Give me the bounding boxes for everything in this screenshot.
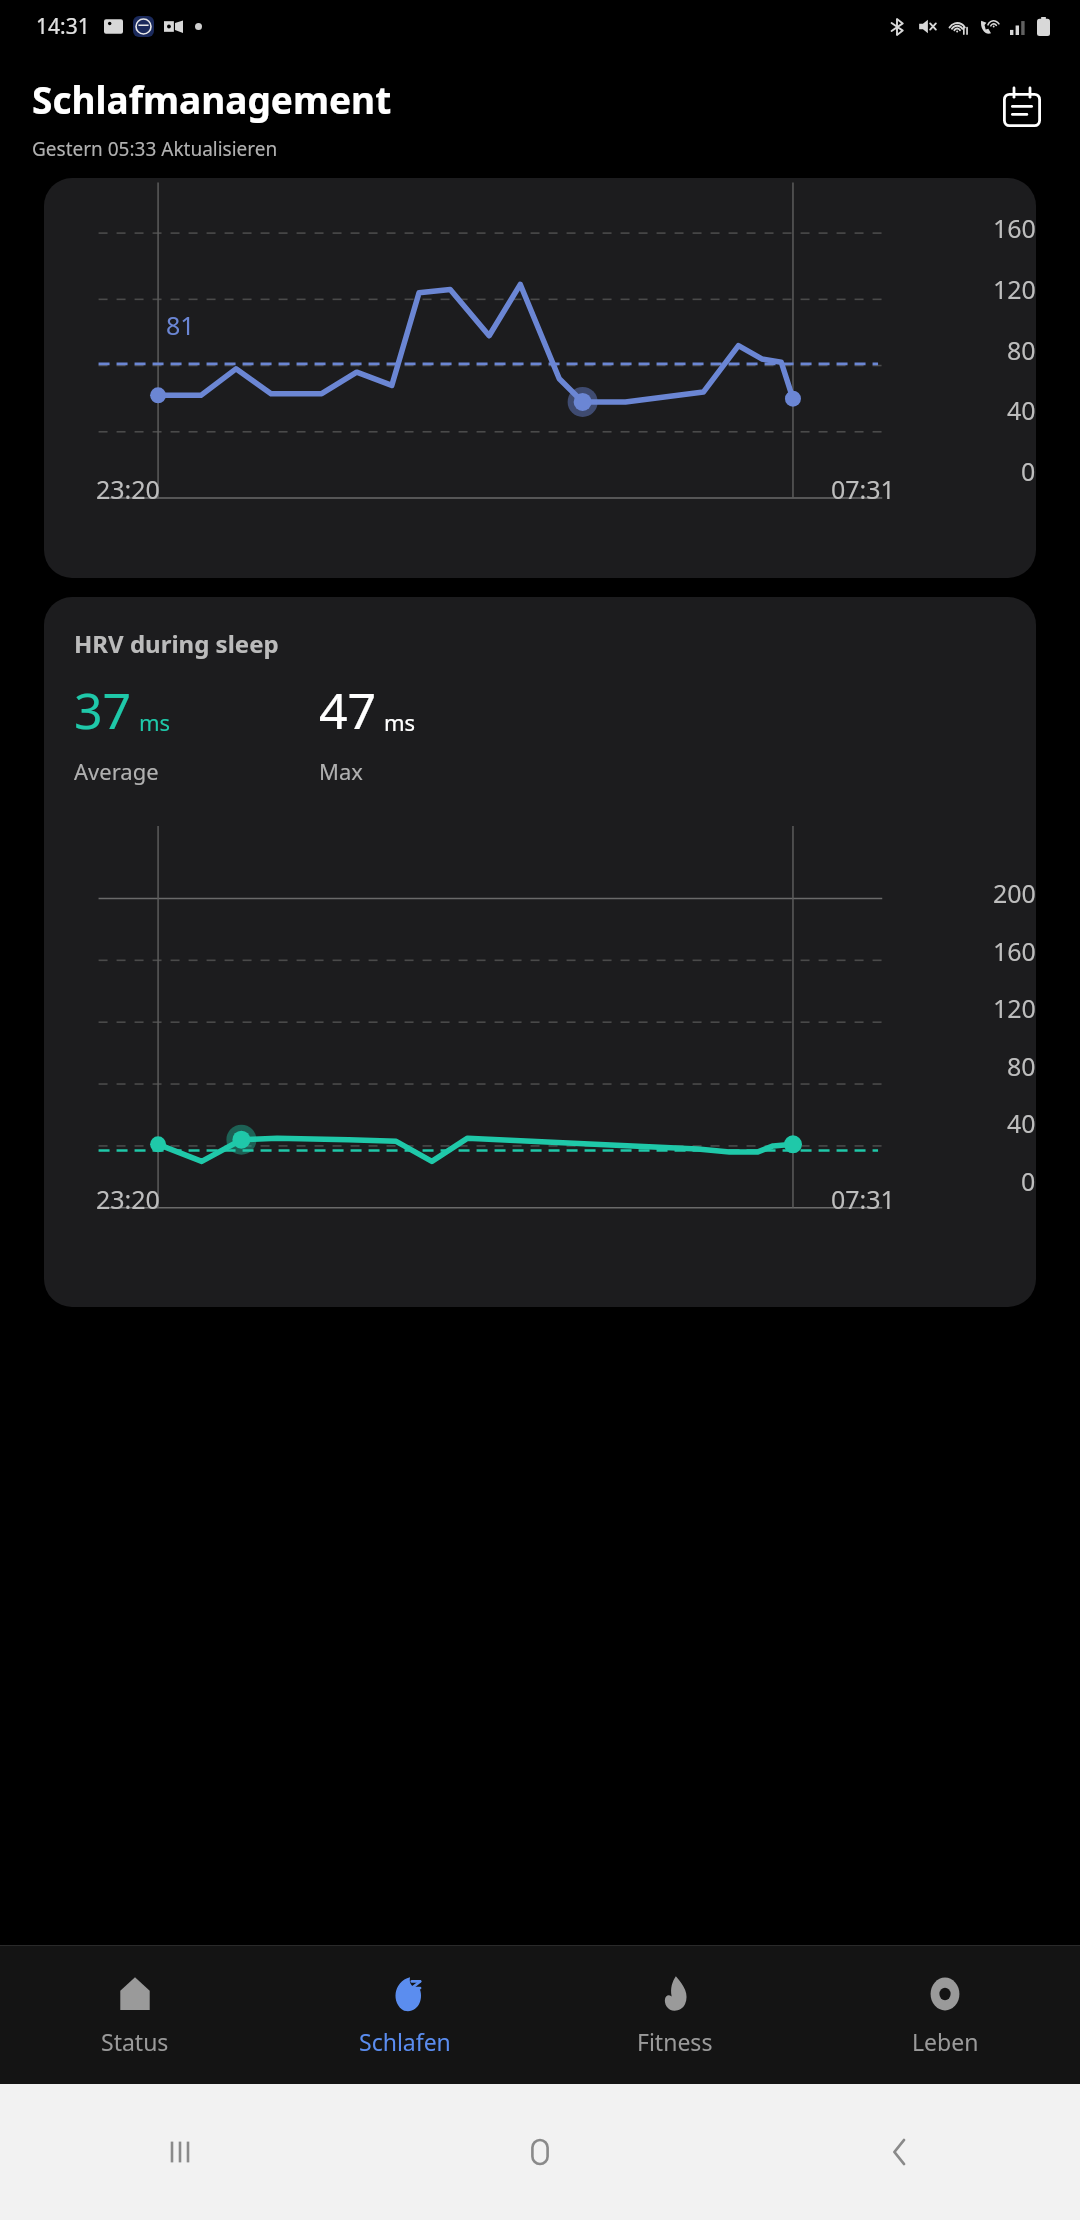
staticText: Fitness (637, 2026, 713, 2057)
button[interactable]: Zurück (720, 2084, 1080, 2220)
staticText: 200 (993, 876, 1036, 910)
staticText: Status (101, 2026, 169, 2057)
staticText: Max (319, 756, 363, 786)
staticText: Schlafmanagement (32, 74, 392, 124)
staticText: 160 (993, 934, 1036, 968)
staticText: 0 (1021, 454, 1036, 488)
staticText: 80 (1007, 1049, 1036, 1083)
staticText: 40 (1007, 393, 1036, 427)
button[interactable]: Letzte Apps (0, 2084, 360, 2220)
button[interactable]: 160 (44, 178, 1036, 578)
staticText: 23:20 (96, 472, 160, 506)
staticText: Average (74, 756, 159, 786)
staticText: 0 (1021, 1164, 1036, 1198)
staticText: 160 (993, 211, 1036, 245)
staticText: 47 (319, 676, 377, 744)
staticText: HRV during sleep (74, 627, 279, 660)
button[interactable]: Status (0, 1965, 270, 2065)
staticText: 37 (74, 676, 132, 744)
staticText: 14:31 (36, 12, 90, 41)
staticText: ms (384, 707, 416, 737)
staticText: 23:20 (96, 1182, 160, 1216)
button[interactable]: Gestern 05:33 Aktualisieren (32, 136, 278, 162)
staticText: 120 (993, 272, 1036, 306)
button[interactable]: Leben (810, 1965, 1080, 2065)
button[interactable]: Startbildschirm (360, 2084, 720, 2220)
button[interactable]: Schlafen (270, 1965, 540, 2065)
staticText: 40 (1007, 1106, 1036, 1140)
staticText: 07:31 (831, 472, 895, 506)
staticText: Gestern 05:33 Aktualisieren (32, 136, 278, 162)
button[interactable]: Kalender (990, 76, 1054, 140)
staticText: 80 (1007, 333, 1036, 367)
button[interactable]: HRV during sleep (44, 597, 1036, 1307)
staticText: ms (139, 707, 171, 737)
staticText: Schlafen (359, 2026, 451, 2057)
button[interactable]: Fitness (540, 1965, 810, 2065)
staticText: 120 (993, 991, 1036, 1025)
staticText: Leben (912, 2026, 979, 2057)
staticText: 81 (166, 308, 195, 342)
staticText: 07:31 (831, 1182, 895, 1216)
